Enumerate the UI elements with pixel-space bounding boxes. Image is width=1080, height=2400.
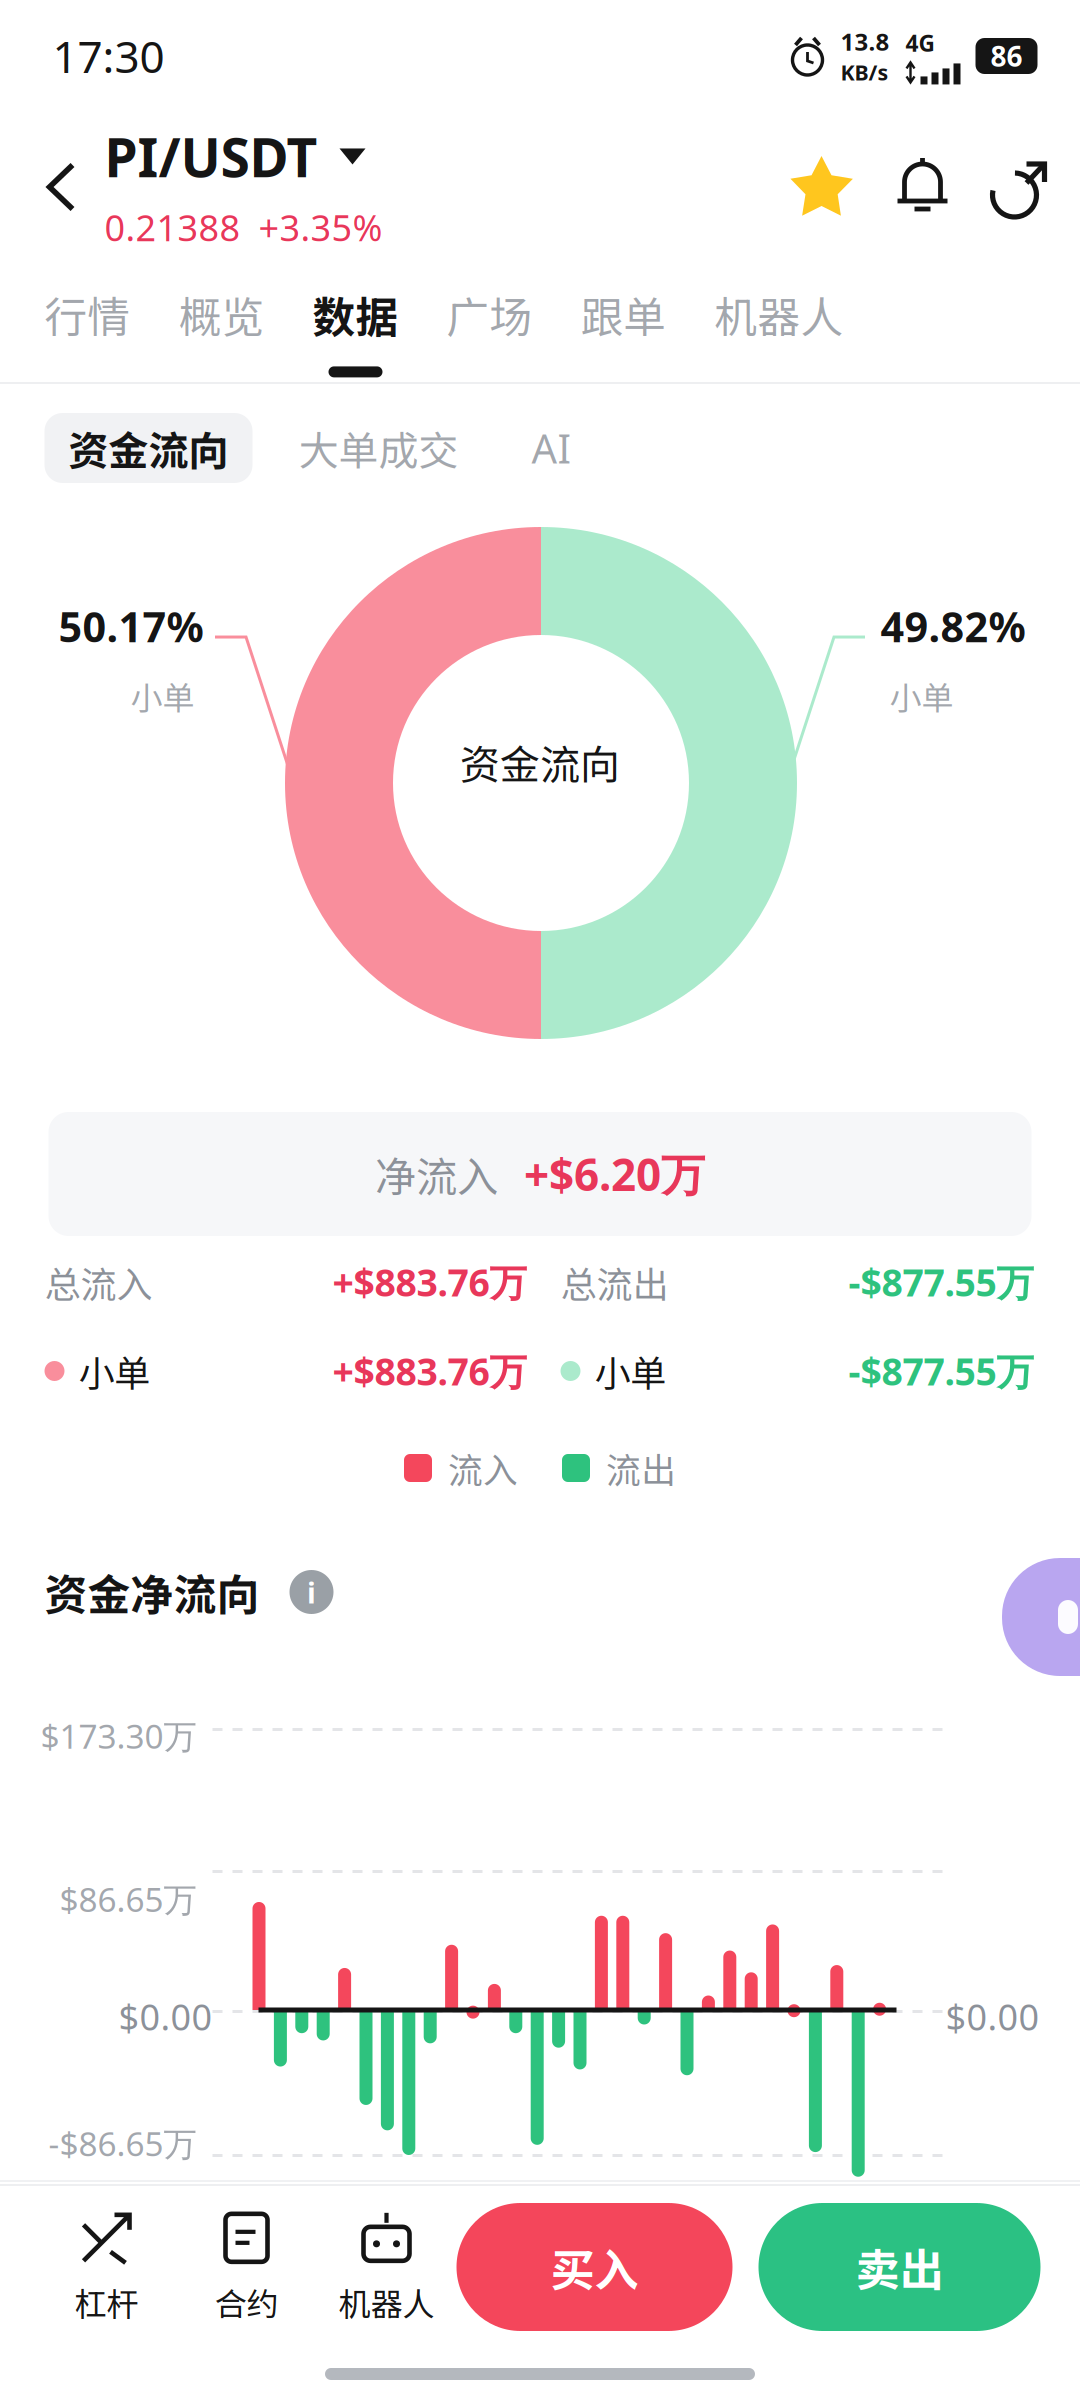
staticText: 总流出 [560, 1256, 668, 1308]
staticText: 合约 [214, 2279, 278, 2325]
staticText: 0.21388 +3.35% [104, 203, 382, 252]
staticText: 4G [905, 28, 934, 58]
staticText: 49.82% [880, 598, 1025, 654]
staticText: 小单 [130, 672, 194, 719]
staticText: 卖出 [855, 2235, 943, 2299]
staticText: 大单成交 [298, 419, 458, 477]
button[interactable]: 行情 [20, 263, 154, 381]
staticText: 概览 [178, 284, 264, 345]
staticText: 资金流向 [68, 419, 228, 477]
button[interactable]: 合约 [176, 2209, 316, 2325]
staticText: i [307, 1572, 316, 1612]
staticText: 86 [990, 37, 1022, 75]
staticText: AI [531, 421, 571, 475]
staticText: 17:30 [52, 26, 164, 86]
staticText: +$883.76万 [332, 1257, 526, 1307]
staticText: -$877.55万 [848, 1257, 1033, 1307]
staticText: 杠杆 [74, 2279, 138, 2325]
button[interactable]: AI assistant [1002, 1558, 1080, 1676]
staticText: 13.8 [840, 25, 889, 58]
staticText: $86.65万 [59, 1876, 196, 1922]
button[interactable]: 卖出 [758, 2203, 1040, 2331]
staticText: 数据 [312, 284, 398, 345]
staticText: 净流入 [375, 1144, 498, 1204]
staticText: 行情 [44, 284, 130, 345]
staticText: 跟单 [580, 284, 666, 345]
staticText: $0.00 [118, 1992, 212, 2041]
button[interactable]: Info [289, 1570, 333, 1614]
staticText: 流入 [448, 1443, 518, 1493]
button[interactable]: 数据 [288, 263, 422, 381]
staticText: 资金净流向 [44, 1561, 259, 1623]
staticText: 总流入 [44, 1256, 152, 1308]
button[interactable]: 机器人 [690, 263, 867, 381]
button[interactable]: Add to favourites [785, 151, 857, 223]
staticText: KB/s [840, 58, 888, 87]
staticText: 小单 [889, 672, 953, 719]
button[interactable]: Price alerts [891, 151, 953, 223]
staticText: 资金流向 [460, 733, 620, 791]
staticText: -$86.65万 [48, 2121, 196, 2166]
button[interactable]: 机器人 [316, 2209, 456, 2325]
button[interactable]: 广场 [422, 263, 556, 381]
button[interactable]: Back [34, 129, 90, 245]
button[interactable]: 资金流向 [44, 413, 252, 483]
button[interactable]: 买入 [456, 2203, 732, 2331]
staticText: 机器人 [714, 284, 843, 345]
button[interactable]: AI [516, 413, 586, 483]
staticText: 小单 [78, 1345, 150, 1397]
staticText: PI/USDT [104, 120, 317, 193]
button[interactable]: 跟单 [556, 263, 690, 381]
staticText: 50.17% [58, 598, 203, 654]
staticText: $0.00 [945, 1992, 1039, 2041]
staticText: -$877.55万 [848, 1346, 1033, 1396]
staticText: 机器人 [338, 2279, 434, 2325]
staticText: 小单 [594, 1345, 666, 1397]
staticText: +$883.76万 [332, 1346, 526, 1396]
button[interactable]: 大单成交 [288, 413, 468, 483]
button[interactable]: 杠杆 [36, 2209, 176, 2325]
staticText: 流出 [606, 1443, 676, 1493]
staticText: 买入 [550, 2235, 638, 2299]
staticText: $173.30万 [40, 1713, 196, 1758]
staticText: +$6.20万 [524, 1144, 705, 1204]
button[interactable]: Share [985, 151, 1049, 223]
button[interactable]: 概览 [154, 263, 288, 381]
staticText: 广场 [446, 284, 532, 345]
